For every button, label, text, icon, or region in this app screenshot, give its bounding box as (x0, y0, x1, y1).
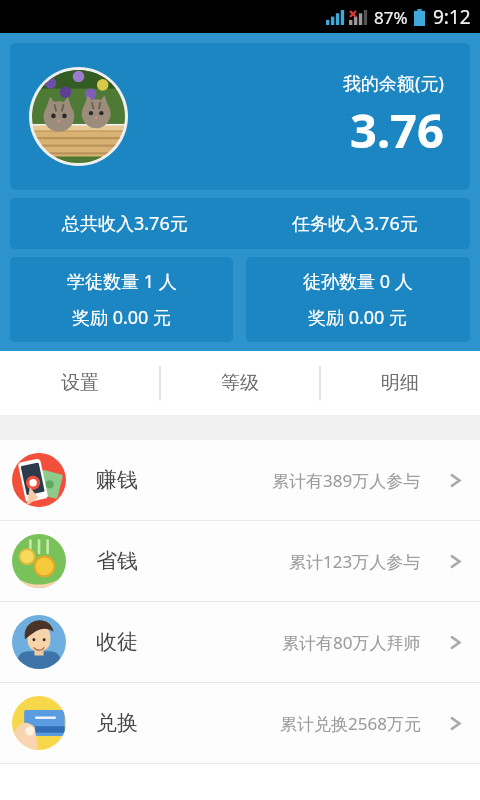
staticText: 省钱 (96, 548, 138, 574)
other: 查看详情 (449, 471, 462, 490)
staticText: 累计123万人参与 (289, 550, 421, 573)
staticText: 设置 (61, 371, 99, 395)
staticText: 奖励 0.00 元 (308, 305, 408, 330)
button[interactable]: 任务收入3.76元 (240, 198, 470, 249)
staticText: 87% (374, 6, 408, 29)
button[interactable]: 赚钱 (0, 440, 480, 520)
button[interactable]: 等级 (160, 351, 320, 415)
button[interactable]: 设置 (0, 351, 160, 415)
staticText: 累计有389万人参与 (272, 469, 421, 492)
staticText: 学徒数量 1 人 (67, 269, 177, 294)
staticText: 兑换 (96, 710, 138, 736)
staticText: 等级 (221, 371, 259, 395)
button[interactable]: 省钱 (0, 521, 480, 601)
staticText: 赚钱 (96, 467, 138, 493)
staticText: 总共收入3.76元 (62, 211, 188, 236)
button[interactable]: 明细 (320, 351, 480, 415)
staticText: 累计有80万人拜师 (282, 631, 421, 654)
other: 查看详情 (449, 714, 462, 733)
staticText: 任务收入3.76元 (292, 211, 418, 236)
staticText: 收徒 (96, 629, 138, 655)
staticText: 奖励 0.00 元 (72, 305, 172, 330)
staticText: 9:12 (433, 4, 471, 30)
button[interactable]: 学徒数量 1 人 (10, 257, 233, 342)
staticText: 明细 (381, 371, 419, 395)
staticText: 3.76 (350, 98, 444, 162)
button[interactable]: 徒孙数量 0 人 (246, 257, 470, 342)
staticText: 累计兑换2568万元 (280, 712, 421, 735)
button[interactable]: 我的余额(元) (10, 43, 470, 190)
button[interactable]: 收徒 (0, 602, 480, 682)
other: 查看详情 (449, 552, 462, 571)
staticText: 徒孙数量 0 人 (303, 269, 413, 294)
button[interactable]: 总共收入3.76元 (10, 198, 240, 249)
staticText: 我的余额(元) (343, 71, 444, 96)
button[interactable]: 兑换 (0, 683, 480, 763)
other: 查看详情 (449, 633, 462, 652)
